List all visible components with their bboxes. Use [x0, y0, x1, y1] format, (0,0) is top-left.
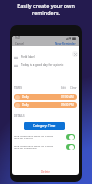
staticText: Field label [21, 55, 35, 59]
staticText: Ring notification when it's a good time … [14, 134, 64, 140]
staticText: Clear [70, 86, 77, 90]
button[interactable]: Delete [12, 169, 79, 175]
button[interactable]: Toggle notification [66, 144, 75, 150]
button[interactable]: Clear [72, 51, 78, 57]
staticText: Delete [41, 170, 50, 174]
button[interactable]: Today is a good day for a picnic [12, 62, 79, 68]
button[interactable]: Ring notification when it's a good time … [12, 144, 79, 150]
staticText: Daily [22, 103, 29, 107]
button[interactable]: Ring notification when it's a good time … [12, 134, 79, 140]
staticText: TIMES [14, 86, 22, 90]
staticText: Category: Time [33, 124, 56, 128]
staticText: 07:00 AM [61, 95, 74, 99]
staticText: 09:30 PM [61, 103, 74, 107]
staticText: 9:41 [15, 36, 21, 40]
staticText: Edit [61, 86, 66, 90]
staticText: Easily create your own reminders. [0, 2, 92, 16]
button[interactable]: Daily [14, 94, 77, 100]
button[interactable]: Field label [12, 54, 79, 60]
staticText: DETAILS [14, 114, 25, 118]
button[interactable]: New Reminder [55, 42, 76, 46]
button[interactable]: Category: Time [24, 122, 65, 130]
staticText: Cancel [15, 42, 24, 46]
staticText: Ring notification when it's a good time … [14, 144, 64, 150]
staticText: New Reminder [55, 42, 76, 46]
button[interactable]: Cancel [15, 42, 24, 46]
staticText: Today is a good day for a picnic [21, 63, 64, 67]
staticText: Daily [22, 95, 29, 99]
button[interactable]: Daily [14, 102, 77, 108]
button[interactable]: Clear [70, 86, 77, 90]
button[interactable]: Toggle notification [66, 134, 75, 140]
button[interactable]: Edit [61, 86, 66, 90]
